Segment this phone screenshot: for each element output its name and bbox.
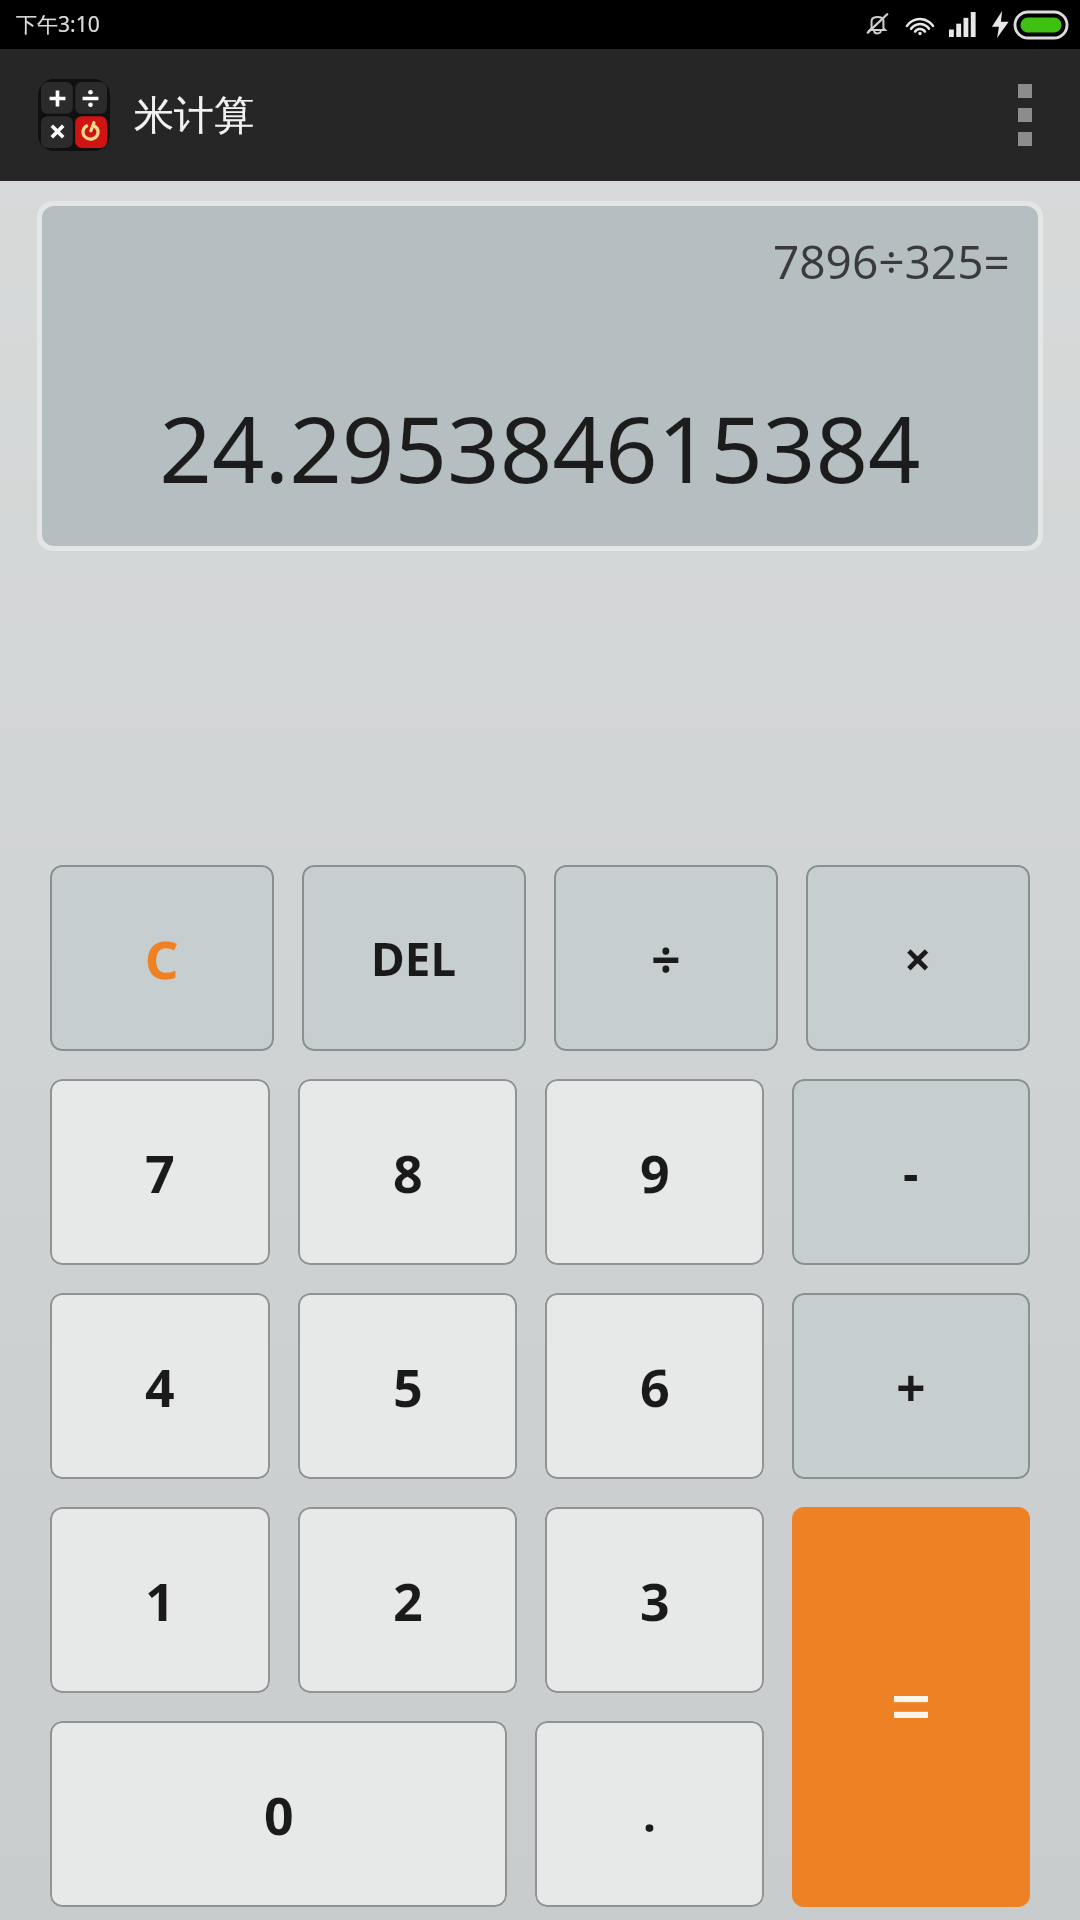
button[interactable]: C <box>50 865 274 1051</box>
staticText: 7896÷325= <box>773 230 1010 293</box>
staticText: 5 <box>393 1351 423 1422</box>
staticText: 0 <box>264 1779 294 1850</box>
staticText: ÷ <box>651 923 681 994</box>
button[interactable]: 7 <box>50 1079 270 1265</box>
staticText: 9 <box>640 1137 670 1208</box>
staticText: 米计算 <box>134 90 254 140</box>
button[interactable]: 9 <box>545 1079 764 1265</box>
button[interactable]: App icon <box>41 82 107 148</box>
button[interactable]: 7896÷325= <box>42 206 1038 546</box>
staticText: 1 <box>145 1565 175 1636</box>
staticText: 24.295384615384 <box>60 385 1020 510</box>
button[interactable]: More options <box>970 49 1080 181</box>
staticText: . <box>643 1783 656 1846</box>
staticText: DEL <box>371 927 457 990</box>
button[interactable]: DEL <box>302 865 526 1051</box>
button[interactable]: 4 <box>50 1293 270 1479</box>
button[interactable]: 8 <box>298 1079 517 1265</box>
button[interactable]: × <box>806 865 1030 1051</box>
button[interactable]: 3 <box>545 1507 764 1693</box>
staticText: 2 <box>393 1565 423 1636</box>
button[interactable]: 2 <box>298 1507 517 1693</box>
staticText: 下午3:10 <box>16 10 100 39</box>
button[interactable]: Equals <box>792 1507 1030 1907</box>
staticText: × <box>904 926 932 991</box>
staticText: 7 <box>145 1137 175 1208</box>
button[interactable]: ÷ <box>554 865 778 1051</box>
staticText: 3 <box>640 1565 670 1636</box>
staticText: - <box>903 1140 919 1205</box>
staticText: C <box>145 923 179 994</box>
button[interactable]: 5 <box>298 1293 517 1479</box>
staticText: + <box>896 1351 926 1422</box>
button[interactable]: + <box>792 1293 1030 1479</box>
button[interactable]: 0 <box>50 1721 507 1907</box>
staticText: 6 <box>640 1351 670 1422</box>
button[interactable]: - <box>792 1079 1030 1265</box>
staticText: 4 <box>145 1351 175 1422</box>
button[interactable]: 6 <box>545 1293 764 1479</box>
button[interactable]: 1 <box>50 1507 270 1693</box>
button[interactable]: . <box>535 1721 764 1907</box>
staticText: 8 <box>393 1137 423 1208</box>
